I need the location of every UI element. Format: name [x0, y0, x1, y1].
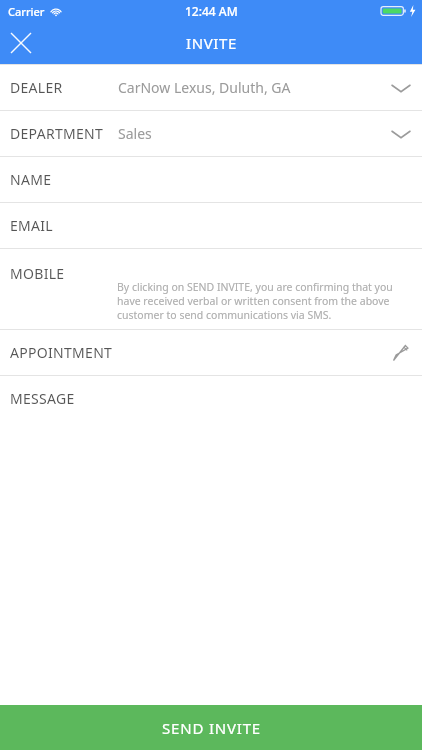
- button[interactable]: MOBILE: [0, 249, 422, 329]
- staticText: Sales: [118, 124, 152, 143]
- staticText: SEND INVITE: [162, 718, 261, 738]
- button[interactable]: APPOINTMENT: [0, 330, 422, 375]
- staticText: Carrier: [8, 4, 45, 19]
- staticText: MESSAGE: [10, 389, 75, 408]
- staticText: 12:44 AM: [185, 3, 238, 19]
- button[interactable]: DEALER: [0, 65, 422, 110]
- button[interactable]: Close: [0, 22, 42, 64]
- button[interactable]: EMAIL: [0, 203, 422, 248]
- button[interactable]: SEND INVITE: [0, 705, 422, 750]
- button[interactable]: NAME: [0, 157, 422, 202]
- staticText: By clicking on SEND INVITE, you are conf…: [117, 280, 404, 322]
- staticText: NAME: [10, 170, 52, 189]
- staticText: DEALER: [10, 78, 63, 97]
- staticText: APPOINTMENT: [10, 343, 113, 362]
- staticText: EMAIL: [10, 216, 54, 235]
- staticText: MOBILE: [10, 264, 65, 283]
- staticText: INVITE: [186, 33, 237, 53]
- button[interactable]: MESSAGE: [0, 376, 422, 421]
- staticText: CarNow Lexus, Duluth, GA: [118, 78, 291, 97]
- button[interactable]: DEPARTMENT: [0, 111, 422, 156]
- button[interactable]: Edit appointment: [389, 341, 413, 365]
- staticText: DEPARTMENT: [10, 124, 104, 143]
